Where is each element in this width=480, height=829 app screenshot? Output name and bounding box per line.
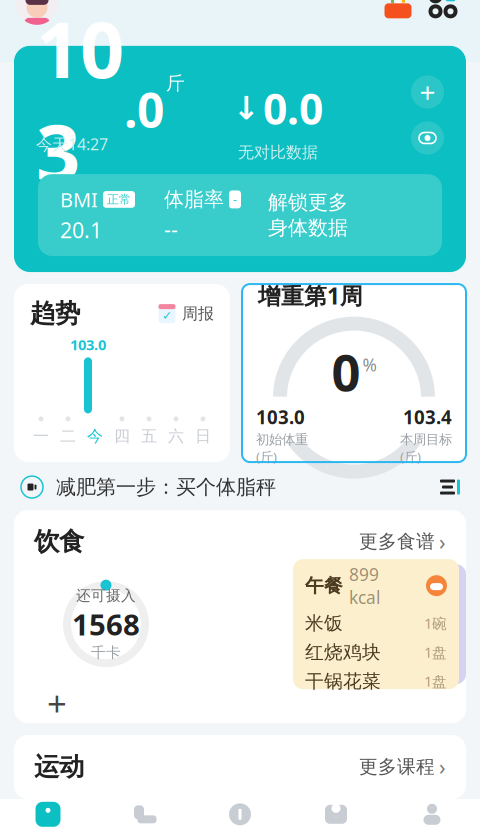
- staticText: 五: [141, 426, 157, 446]
- staticText: 0: [331, 338, 360, 405]
- staticText: 四: [114, 426, 130, 446]
- staticText: 正常: [107, 192, 131, 207]
- staticText: BMI: [60, 186, 98, 213]
- staticText: 减肥第一步：买个体脂秤: [56, 475, 276, 499]
- staticText: 1盘: [424, 671, 447, 691]
- button[interactable]: 运动: [96, 799, 192, 829]
- staticText: 斤: [166, 72, 185, 95]
- staticText: 还可摄入: [76, 587, 136, 605]
- staticText: 本周目标(斤): [400, 431, 452, 465]
- staticText: 20.1: [60, 216, 102, 244]
- staticText: 更多食谱: [359, 530, 435, 553]
- staticText: 899 kcal: [349, 563, 380, 609]
- button[interactable]: ✓: [157, 304, 214, 324]
- staticText: +: [47, 680, 67, 726]
- staticText: ↓: [233, 90, 260, 126]
- staticText: 1568: [72, 605, 140, 644]
- staticText: 一: [33, 426, 49, 446]
- staticText: 二: [60, 426, 76, 446]
- staticText: ›: [439, 753, 446, 781]
- staticText: 体脂率: [164, 187, 224, 212]
- staticText: 日: [195, 426, 211, 446]
- button[interactable]: 更多课程: [359, 753, 446, 781]
- staticText: +: [419, 73, 435, 111]
- staticText: 103.0: [256, 405, 305, 429]
- staticText: 身体数据: [268, 216, 348, 240]
- staticText: 103.0: [70, 335, 106, 354]
- staticText: 0.0: [263, 80, 323, 136]
- staticText: 今天14:27: [36, 133, 108, 155]
- staticText: 千卡: [91, 644, 121, 662]
- staticText: 解锁更多: [268, 190, 348, 215]
- staticText: 六: [168, 426, 184, 446]
- staticText: 干锅花菜: [305, 670, 381, 693]
- button[interactable]: Add food: [40, 689, 74, 717]
- staticText: 午餐: [305, 574, 343, 597]
- staticText: 红烧鸡块: [305, 641, 381, 664]
- button[interactable]: 发现: [192, 799, 288, 829]
- staticText: 趋势: [30, 298, 80, 329]
- staticText: 103: [36, 0, 124, 202]
- button[interactable]: 商城: [288, 799, 384, 829]
- staticText: -: [233, 191, 237, 207]
- staticText: ✓: [162, 309, 172, 322]
- staticText: %: [362, 353, 376, 376]
- staticText: .0: [124, 77, 164, 141]
- staticText: 米饭: [305, 612, 343, 635]
- button[interactable]: Profile: [16, 0, 58, 25]
- staticText: 增重第1周: [258, 281, 363, 311]
- button[interactable]: 我: [384, 799, 480, 829]
- staticText: 今: [87, 426, 103, 446]
- button[interactable]: Menu: [422, 0, 464, 25]
- staticText: 103.4: [403, 405, 452, 429]
- staticText: 饮食: [34, 526, 84, 557]
- staticText: --: [164, 215, 178, 243]
- staticText: 运动: [34, 751, 84, 782]
- button[interactable]: 更多食谱: [359, 527, 446, 556]
- button[interactable]: Shop basket: [380, 0, 416, 22]
- staticText: 更多课程: [359, 755, 435, 778]
- button[interactable]: Add weight record: [411, 75, 444, 108]
- staticText: 1盘: [424, 642, 447, 662]
- staticText: 1碗: [424, 613, 447, 633]
- button[interactable]: 解锁更多: [268, 190, 354, 240]
- staticText: 无对比数据: [238, 142, 318, 162]
- button[interactable]: Hide values: [411, 121, 444, 154]
- staticText: 初始体重(斤): [256, 431, 308, 465]
- staticText: ›: [439, 527, 446, 556]
- staticText: 周报: [182, 304, 214, 323]
- button[interactable]: 首页: [0, 799, 96, 829]
- button[interactable]: 减肥第一步：买个体脂秤: [0, 464, 480, 510]
